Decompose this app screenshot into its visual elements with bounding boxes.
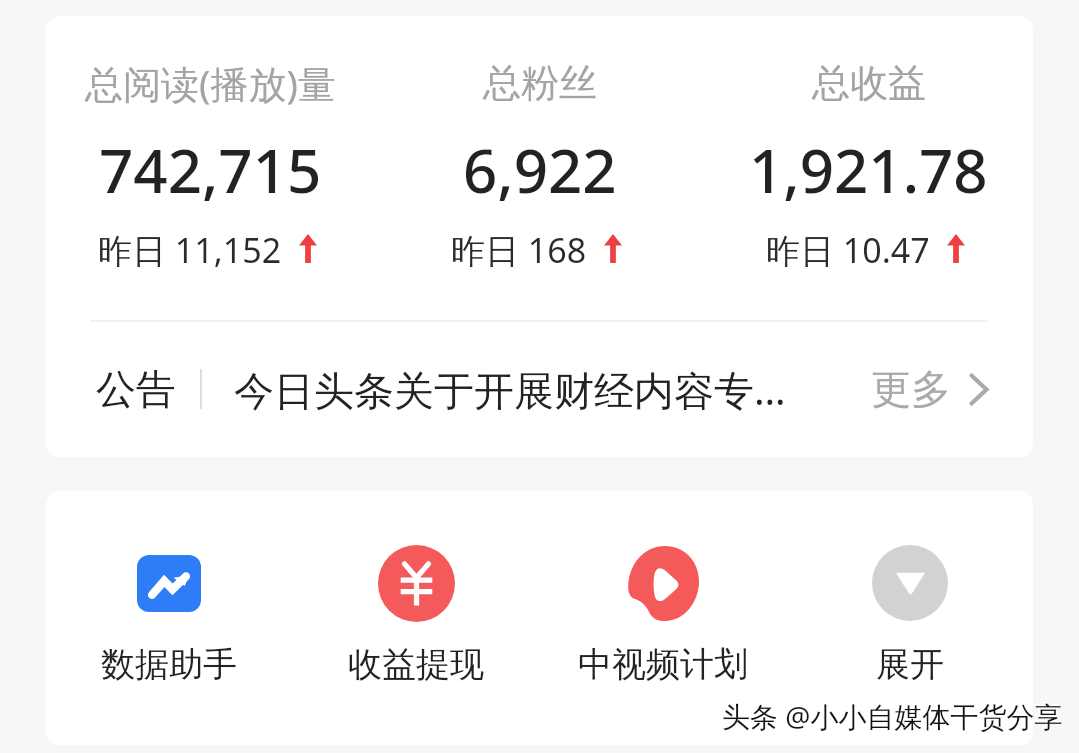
button[interactable]: 数据助手 (46, 529, 292, 686)
staticText: 总粉丝 (483, 59, 597, 107)
staticText: 1,921.78 (749, 129, 988, 211)
staticText: 头条 @小小自媒体干货分享 (722, 697, 1063, 735)
button[interactable]: 收益提现 (293, 529, 539, 686)
button[interactable]: 中视频计划 (540, 529, 786, 686)
staticText: 更多 (871, 364, 951, 414)
button[interactable]: 总收益 (704, 57, 1033, 273)
other: 更多 (969, 373, 989, 406)
staticText: 展开 (876, 643, 944, 686)
staticText: 中视频计划 (578, 643, 748, 686)
staticText: 总收益 (812, 59, 926, 107)
button[interactable]: 总粉丝 (375, 57, 704, 273)
button[interactable]: 总阅读(播放)量 (46, 57, 375, 273)
staticText: 昨日 168 (451, 227, 587, 273)
other: 展开 (872, 545, 948, 621)
other: 数据助手 (137, 555, 201, 612)
staticText: 公告 (96, 364, 176, 414)
staticText: 6,922 (463, 129, 617, 211)
other: 中视频计划 (628, 546, 699, 621)
staticText: 数据助手 (101, 643, 237, 686)
staticText: 头条 @小小自媒体干货分享 (720, 695, 1061, 733)
staticText: 昨日 11,152 (98, 227, 282, 273)
staticText: 收益提现 (348, 643, 484, 686)
staticText: 总阅读(播放)量 (85, 57, 336, 109)
staticText: 今日头条关于开展财经内容专… (234, 362, 786, 417)
button[interactable]: 展开 (787, 529, 1033, 686)
staticText: 742,715 (99, 129, 322, 211)
other: 收益提现 (378, 545, 455, 622)
staticText: 昨日 10.47 (766, 227, 930, 273)
button[interactable]: 公告 (46, 330, 1033, 448)
